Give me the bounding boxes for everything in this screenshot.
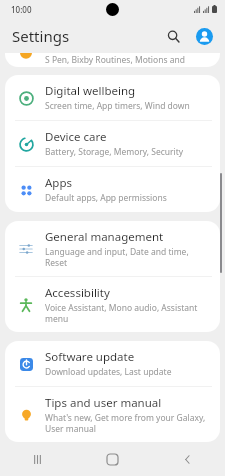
- staticText: What's new, Get more from your Galaxy, U…: [45, 412, 208, 434]
- staticText: Default apps, App permissions: [45, 192, 167, 204]
- button[interactable]: Tips and user manual: [5, 387, 220, 442]
- staticText: Voice Assistant, Mono audio, Assistant m…: [45, 302, 208, 324]
- button[interactable]: Software update: [5, 341, 220, 386]
- button[interactable]: Account: [193, 25, 215, 47]
- staticText: S Pen, Bixby Routines, Motions and gestu…: [45, 54, 220, 67]
- staticText: Language and input, Date and time, Reset: [45, 246, 208, 268]
- button[interactable]: Back: [150, 442, 225, 476]
- button[interactable]: Accessibility: [5, 277, 220, 332]
- staticText: Settings: [12, 26, 70, 46]
- staticText: Device care: [45, 129, 107, 145]
- staticText: Tips and user manual: [45, 395, 162, 411]
- button[interactable]: Home: [75, 442, 150, 476]
- staticText: Accessibility: [45, 285, 110, 301]
- staticText: Download updates, Last update: [45, 366, 172, 378]
- staticText: Screen time, App timers, Wind down: [45, 100, 190, 112]
- button[interactable]: Device care: [5, 121, 220, 166]
- staticText: Battery, Storage, Memory, Security: [45, 146, 184, 158]
- button[interactable]: Recents: [0, 442, 75, 476]
- staticText: General management: [45, 229, 164, 245]
- staticText: Apps: [45, 175, 73, 191]
- staticText: Digital wellbeing: [45, 83, 136, 99]
- staticText: Software update: [45, 349, 135, 365]
- button[interactable]: Search: [162, 25, 184, 47]
- staticText: 10:00: [11, 4, 32, 15]
- button[interactable]: General management: [5, 221, 220, 276]
- button[interactable]: S Pen, Bixby Routines, Motions and gestu…: [5, 53, 220, 67]
- button[interactable]: Apps: [5, 167, 220, 212]
- button[interactable]: Digital wellbeing: [5, 75, 220, 120]
